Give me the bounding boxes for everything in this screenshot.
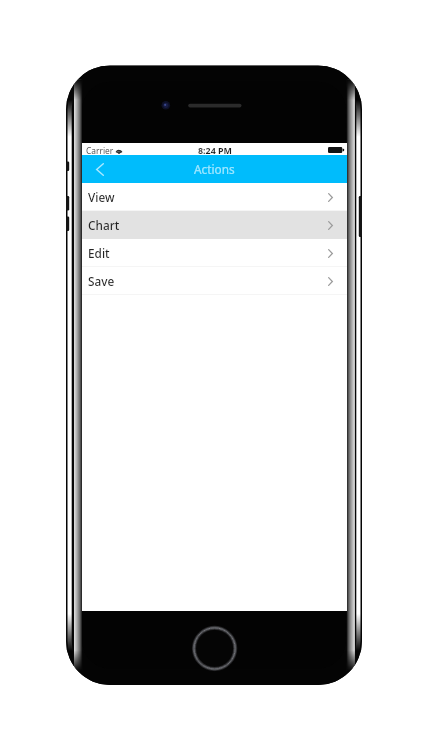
button[interactable]: Save [82,267,347,295]
staticText: Chart [88,217,120,233]
staticText: Edit [88,245,110,261]
button[interactable]: Chart [82,211,347,239]
button[interactable]: View [82,183,347,211]
button[interactable]: Edit [82,239,347,267]
staticText: Save [88,273,115,289]
staticText: Carrier [86,145,114,156]
staticText: Actions [194,161,235,177]
staticText: View [88,189,115,205]
staticText: 8:24 PM [198,144,232,156]
button[interactable]: Back [82,155,114,183]
